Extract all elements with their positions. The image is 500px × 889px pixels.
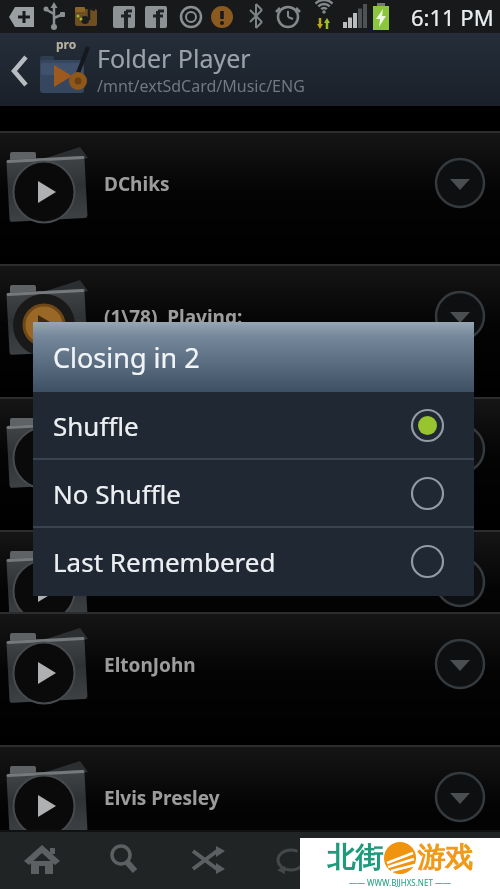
button[interactable]: [415, 830, 498, 889]
button[interactable]: [0, 530, 500, 663]
button[interactable]: [0, 397, 500, 530]
button[interactable]: EltonJohn: [0, 612, 500, 745]
button[interactable]: [434, 638, 486, 690]
button[interactable]: [434, 423, 486, 475]
button[interactable]: [332, 830, 415, 889]
button[interactable]: [434, 556, 486, 608]
staticText: DChiks: [104, 171, 170, 197]
staticText: pro: [56, 36, 77, 52]
button[interactable]: Last Remembered: [33, 528, 474, 594]
staticText: No Shuffle: [53, 476, 181, 511]
button[interactable]: [83, 830, 166, 889]
staticText: Folder Player: [97, 41, 251, 75]
button[interactable]: [249, 830, 332, 889]
button[interactable]: Shuffle: [33, 392, 474, 458]
staticText: 6:11 PM: [411, 2, 494, 32]
staticText: 游戏: [417, 840, 473, 875]
button[interactable]: (1\78) Playing:: [0, 264, 500, 397]
staticText: /mnt/extSdCard/Music/ENG: [97, 75, 305, 97]
button[interactable]: [0, 830, 83, 889]
button[interactable]: 北街: [300, 838, 500, 889]
staticText: Elvis Presley: [104, 785, 220, 811]
staticText: EltonJohn: [104, 652, 196, 678]
button[interactable]: [434, 290, 486, 342]
staticText: Closing in 2: [53, 339, 200, 376]
button[interactable]: DChiks: [0, 131, 500, 264]
staticText: 北街: [327, 840, 383, 875]
staticText: (1\78) Playing:: [104, 304, 243, 330]
staticText: Shuffle: [53, 408, 139, 443]
staticText: Last Remembered: [53, 544, 276, 579]
button[interactable]: [166, 830, 249, 889]
staticText: —— WWW.BJJHXS.NET ——: [349, 877, 451, 888]
button[interactable]: No Shuffle: [33, 460, 474, 526]
button[interactable]: [434, 157, 486, 209]
button[interactable]: Elvis Presley: [0, 745, 500, 878]
button[interactable]: [434, 771, 486, 823]
button[interactable]: [4, 51, 36, 91]
